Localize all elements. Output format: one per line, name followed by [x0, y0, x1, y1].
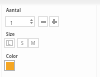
staticText: L	[8, 40, 11, 46]
button[interactable]: 1	[5, 16, 35, 27]
button[interactable]: M	[28, 38, 39, 48]
staticText: S	[21, 40, 24, 46]
button[interactable]: L	[4, 38, 15, 48]
button[interactable]: Decrease	[38, 16, 48, 27]
staticText: Aantal	[6, 7, 21, 13]
staticText: Size	[6, 31, 15, 37]
button[interactable]: S	[17, 38, 28, 48]
staticText: Color	[6, 53, 18, 59]
button[interactable]: Increase	[49, 16, 59, 27]
staticText: 1	[10, 19, 14, 26]
button[interactable]: Color swatch	[4, 60, 15, 71]
staticText: M	[31, 40, 36, 46]
